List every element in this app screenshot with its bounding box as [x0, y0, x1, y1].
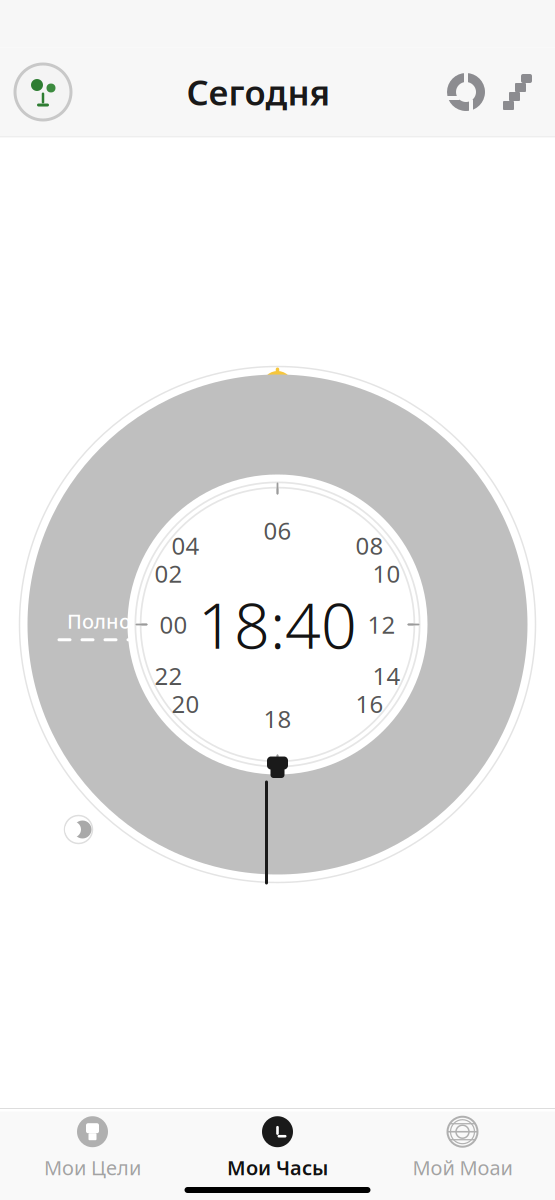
staticText: 14 — [372, 660, 400, 691]
staticText: 06 — [263, 514, 291, 546]
staticText: 00 — [159, 609, 187, 640]
staticText: 04 — [171, 529, 199, 561]
staticText: 10 — [372, 557, 400, 589]
button[interactable]: Статистика — [443, 69, 489, 115]
staticText: 18 — [263, 703, 291, 734]
button[interactable]: Мои Цели — [0, 1117, 185, 1179]
button[interactable]: Редактировать — [489, 69, 535, 115]
button[interactable]: Мой Моаи — [370, 1117, 555, 1179]
staticText: Сегодня — [186, 69, 330, 115]
staticText: 08 — [355, 529, 383, 561]
staticText: Мои Цели — [44, 1154, 141, 1181]
staticText: Мои Часы — [227, 1154, 328, 1181]
staticText: Полночь — [67, 608, 154, 634]
staticText: 22 — [154, 660, 182, 691]
button[interactable]: Мои Часы — [185, 1117, 370, 1179]
staticText: 12 — [367, 609, 395, 640]
staticText: 16 — [355, 688, 383, 719]
button[interactable]: Профиль — [12, 61, 74, 123]
staticText: Мой Моаи — [412, 1154, 512, 1181]
staticText: 18:40 — [198, 583, 357, 666]
staticText: 20 — [171, 688, 199, 719]
staticText: 02 — [154, 557, 182, 589]
